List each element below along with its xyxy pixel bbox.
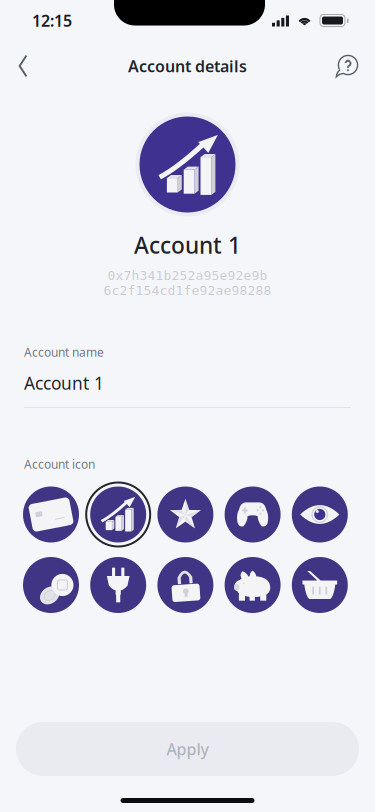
staticText: Account 1 — [24, 371, 104, 394]
button[interactable]: Apply — [16, 722, 359, 776]
staticText: Account name — [24, 344, 104, 360]
staticText: Account 1 — [134, 230, 241, 260]
button[interactable]: Account icon 9 — [221, 553, 285, 617]
button[interactable]: Account icon 2 — [86, 482, 150, 546]
staticText: 6c2f154cd1fe92ae98288 — [103, 283, 271, 298]
staticText: Apply — [166, 738, 208, 760]
button[interactable]: Back — [2, 43, 44, 89]
button[interactable]: Account icon 3 — [153, 482, 217, 546]
button[interactable]: Account icon 8 — [153, 553, 217, 617]
staticText: 12:15 — [32, 10, 72, 31]
button[interactable]: Account icon 4 — [221, 482, 285, 546]
staticText: Account details — [128, 55, 247, 77]
staticText: 0x7h341b252a95e92e9b — [107, 268, 267, 283]
button[interactable]: Account icon 7 — [86, 553, 150, 617]
button[interactable]: Account icon 1 — [19, 482, 83, 546]
button[interactable]: Account icon 6 — [19, 553, 83, 617]
button[interactable]: Account icon 10 — [288, 553, 352, 617]
button[interactable]: Account icon 5 — [288, 482, 352, 546]
button[interactable]: Help — [327, 45, 369, 87]
staticText: Account icon — [24, 456, 95, 472]
